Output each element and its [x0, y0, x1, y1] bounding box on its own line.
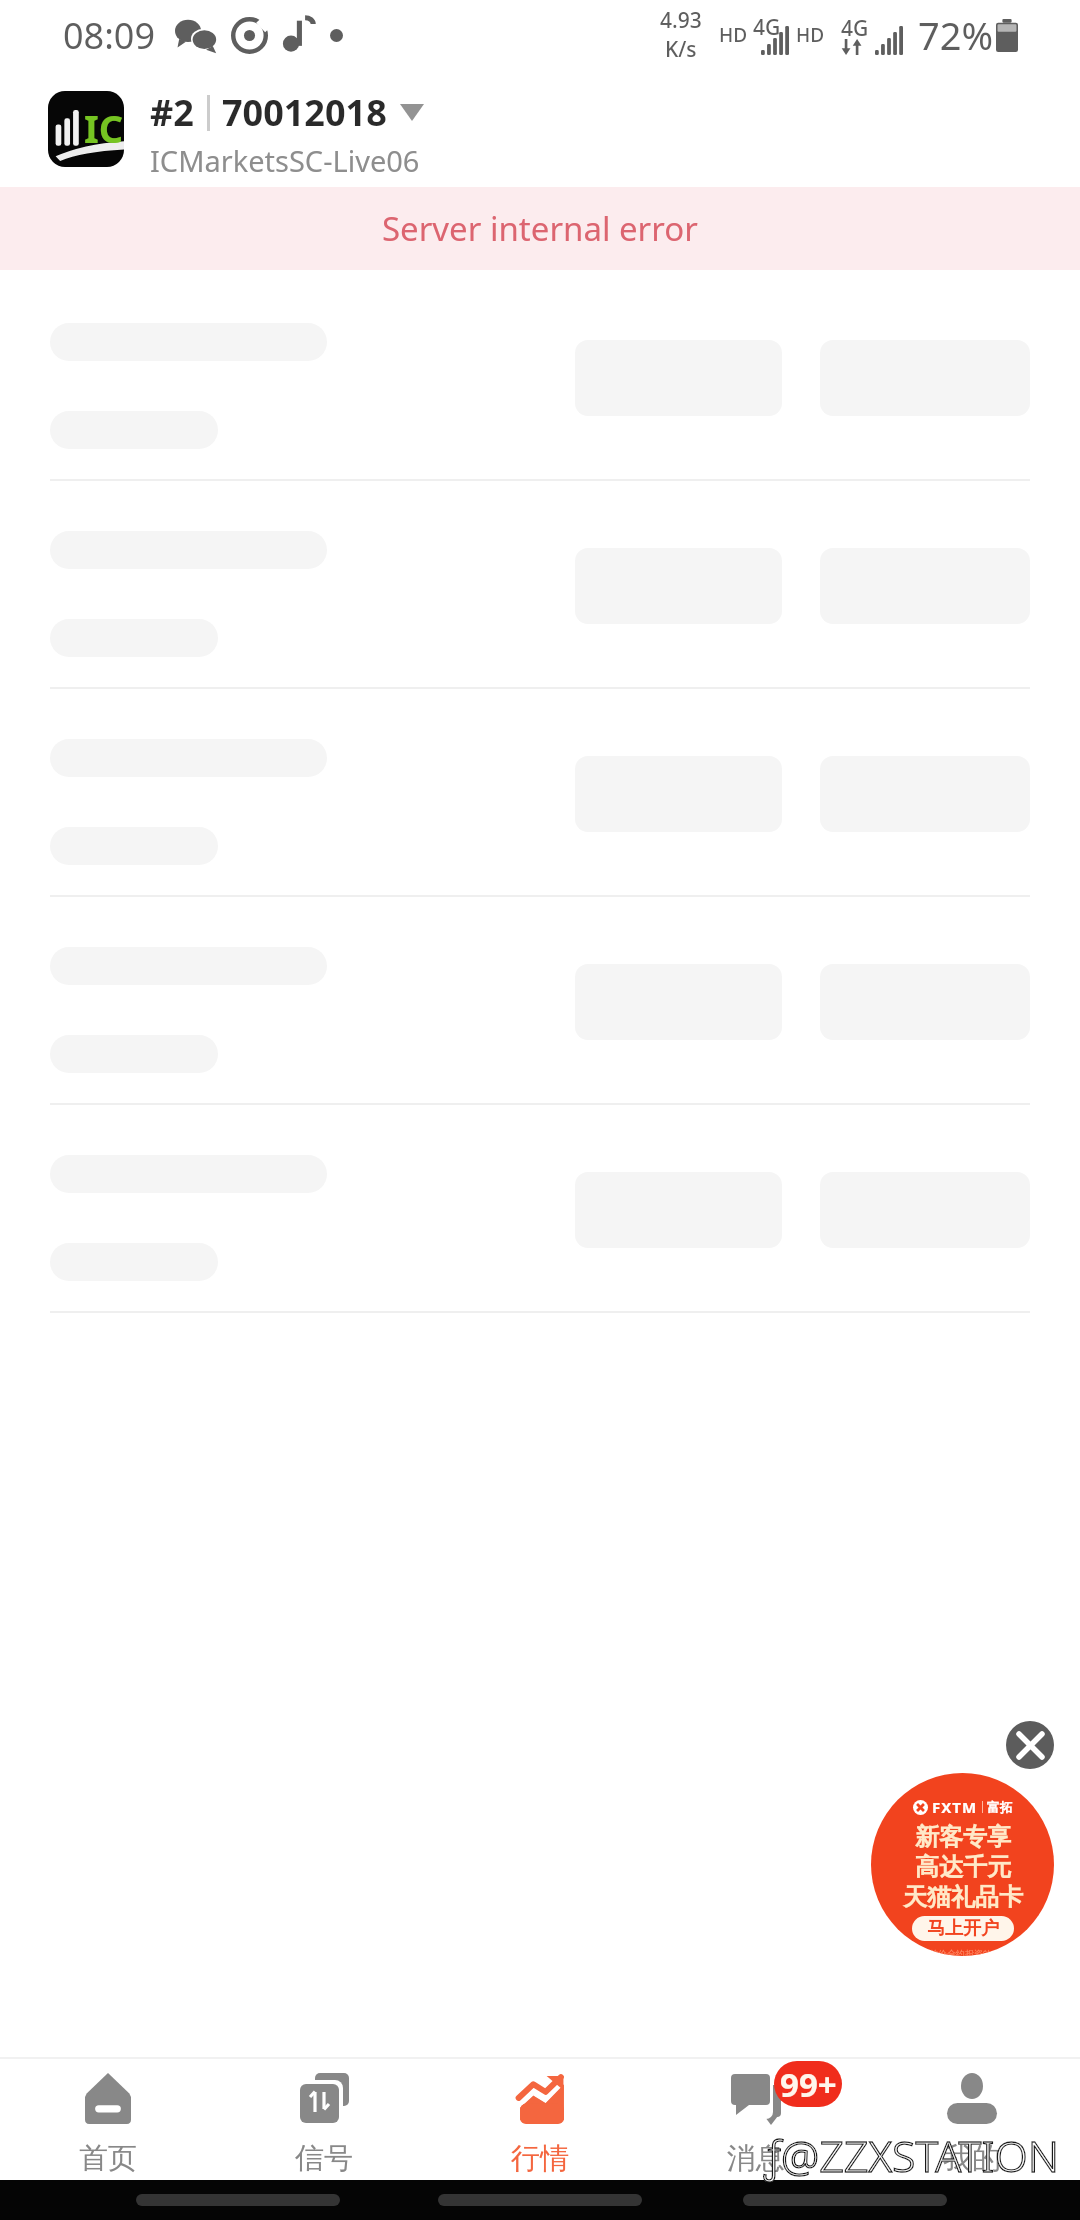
- staticText: 行情: [511, 2140, 569, 2177]
- button[interactable]: [0, 1102, 1080, 1310]
- staticText: 4G: [753, 13, 781, 42]
- staticText: HD: [796, 22, 825, 48]
- staticText: 新客专享: [915, 1822, 1011, 1852]
- staticText: IC: [84, 102, 124, 154]
- staticText: ICMarketsSC-Live06: [150, 141, 420, 180]
- staticText: K/s: [665, 35, 697, 64]
- staticText: 高达千元: [915, 1852, 1011, 1882]
- button[interactable]: [0, 270, 1080, 478]
- staticText: 消息: [727, 2140, 785, 2177]
- staticText: 天猫礼品卡: [903, 1882, 1023, 1912]
- button[interactable]: [0, 686, 1080, 894]
- staticText: 富拓: [987, 1799, 1013, 1815]
- staticText: #2: [150, 88, 194, 137]
- staticText: 70012018: [222, 88, 387, 137]
- staticText: 99+: [780, 2062, 837, 2107]
- staticText: 08:09: [63, 11, 156, 60]
- button[interactable]: [0, 478, 1080, 686]
- staticText: ƒ@ZZXSTATION: [764, 2126, 1059, 2185]
- staticText: 我的: [943, 2140, 1001, 2177]
- button[interactable]: FXTM promotion: [871, 1773, 1054, 1956]
- staticText: Server internal error: [382, 206, 698, 251]
- staticText: 马上开户: [927, 1917, 999, 1940]
- staticText: FXTM: [932, 1797, 978, 1817]
- staticText: *差价合约投资的常: [924, 1947, 1001, 1956]
- button[interactable]: 首页: [0, 2059, 216, 2180]
- button[interactable]: 信号: [216, 2059, 432, 2180]
- staticText: 信号: [295, 2140, 353, 2177]
- button[interactable]: Close ad: [1006, 1721, 1054, 1769]
- button[interactable]: [0, 894, 1080, 1102]
- button[interactable]: 我的: [864, 2059, 1080, 2180]
- staticText: ƒ@ZZXSTATION: [764, 2126, 1059, 2185]
- staticText: 4G: [841, 14, 869, 43]
- staticText: 首页: [79, 2140, 137, 2177]
- button[interactable]: 行情: [432, 2059, 648, 2180]
- staticText: 72%: [918, 9, 994, 61]
- staticText: 4.93: [660, 6, 702, 35]
- button[interactable]: Account icon: [48, 91, 124, 167]
- staticText: HD: [719, 22, 748, 48]
- button[interactable]: 99+: [648, 2059, 864, 2180]
